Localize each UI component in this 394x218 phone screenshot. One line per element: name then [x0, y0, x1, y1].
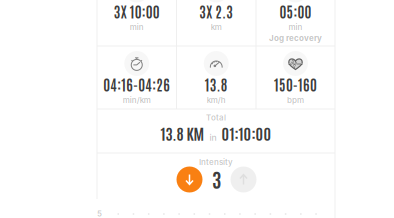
staticText: 3X 2.3 — [199, 2, 233, 20]
staticText: 13.8 KM — [160, 123, 204, 143]
button[interactable]: Increase intensity — [230, 166, 256, 192]
staticText: min — [130, 22, 144, 32]
staticText: 3X 10:00 — [114, 2, 160, 20]
staticText: Jog recovery — [269, 33, 322, 43]
staticText: Intensity — [199, 157, 233, 167]
staticText: 13.8 — [205, 75, 228, 93]
staticText: in — [209, 132, 216, 143]
staticText: 05:00 — [279, 2, 311, 20]
staticText: 5 — [97, 209, 102, 218]
staticText: 150-160 — [274, 75, 317, 93]
staticText: km — [211, 22, 222, 32]
staticText: bpm — [287, 95, 304, 105]
staticText: min — [288, 22, 302, 32]
staticText: min/km — [123, 95, 151, 105]
staticText: 01:10:00 — [221, 123, 271, 143]
staticText: 04:16-04:26 — [103, 75, 170, 93]
staticText: km/h — [207, 95, 226, 105]
staticText: Total — [206, 113, 226, 122]
button[interactable]: Decrease intensity — [176, 166, 202, 192]
staticText: 3 — [212, 166, 221, 191]
